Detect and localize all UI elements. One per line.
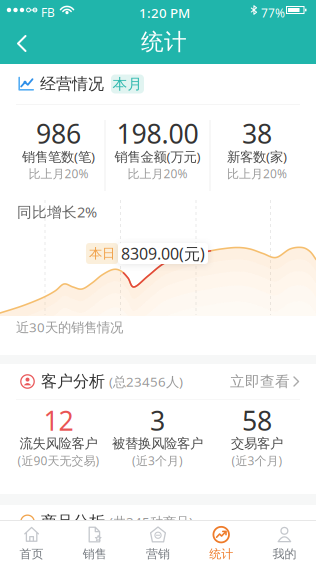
staticText: 3 xyxy=(150,403,165,438)
staticText: (近3个月) xyxy=(132,452,183,468)
button[interactable]: 本月 xyxy=(111,74,144,93)
staticText: 本月 xyxy=(112,75,142,93)
staticText: 986 xyxy=(36,116,81,151)
button[interactable]: 营销 xyxy=(126,520,190,562)
staticText: 统计 xyxy=(209,547,233,561)
staticText: 同比增长2% xyxy=(17,202,97,221)
staticText: 1:20 PM xyxy=(139,4,190,22)
staticText: 被替换风险客户 xyxy=(112,435,203,452)
button[interactable]: 统计 xyxy=(190,520,253,562)
button[interactable]: 我的 xyxy=(253,520,316,562)
button[interactable]: 首页 xyxy=(0,520,63,562)
staticText: 比上月20% xyxy=(227,165,287,181)
staticText: 新客数(家) xyxy=(227,148,287,165)
staticText: 销售金额(万元) xyxy=(114,148,200,165)
staticText: 12 xyxy=(43,403,73,438)
staticText: 58 xyxy=(242,403,272,438)
staticText: 比上月20% xyxy=(28,165,88,181)
staticText: (近90天无交易) xyxy=(17,452,99,468)
staticText: 8309.00(元) xyxy=(121,243,205,264)
staticText: 198.00 xyxy=(116,116,198,151)
staticText: 比上月20% xyxy=(127,165,187,181)
staticText: 经营情况 xyxy=(40,74,104,94)
staticText: 销售笔数(笔) xyxy=(22,148,95,165)
staticText: (共345种商品) xyxy=(109,513,193,531)
staticText: FB xyxy=(41,4,55,20)
staticText: 77% xyxy=(261,5,285,21)
staticText: (总23456人) xyxy=(109,373,183,390)
button[interactable]: 返回 xyxy=(0,20,28,52)
staticText: 营销 xyxy=(146,547,170,561)
staticText: 立即查看 xyxy=(230,372,290,390)
button[interactable]: 销售 xyxy=(63,520,126,562)
staticText: 客户分析 xyxy=(41,372,105,391)
staticText: 首页 xyxy=(20,547,44,561)
staticText: 销售 xyxy=(83,547,107,561)
staticText: 流失风险客户 xyxy=(19,435,97,452)
staticText: 本日 xyxy=(89,245,115,262)
staticText: 统计 xyxy=(141,28,187,56)
staticText: 商品分析 xyxy=(41,512,105,532)
staticText: 交易客户 xyxy=(231,435,283,452)
staticText: (近3个月) xyxy=(231,452,282,468)
staticText: 我的 xyxy=(272,547,296,561)
staticText: 近30天的销售情况 xyxy=(16,318,123,336)
button[interactable]: 立即查看 xyxy=(230,372,300,390)
staticText: 38 xyxy=(242,116,272,151)
